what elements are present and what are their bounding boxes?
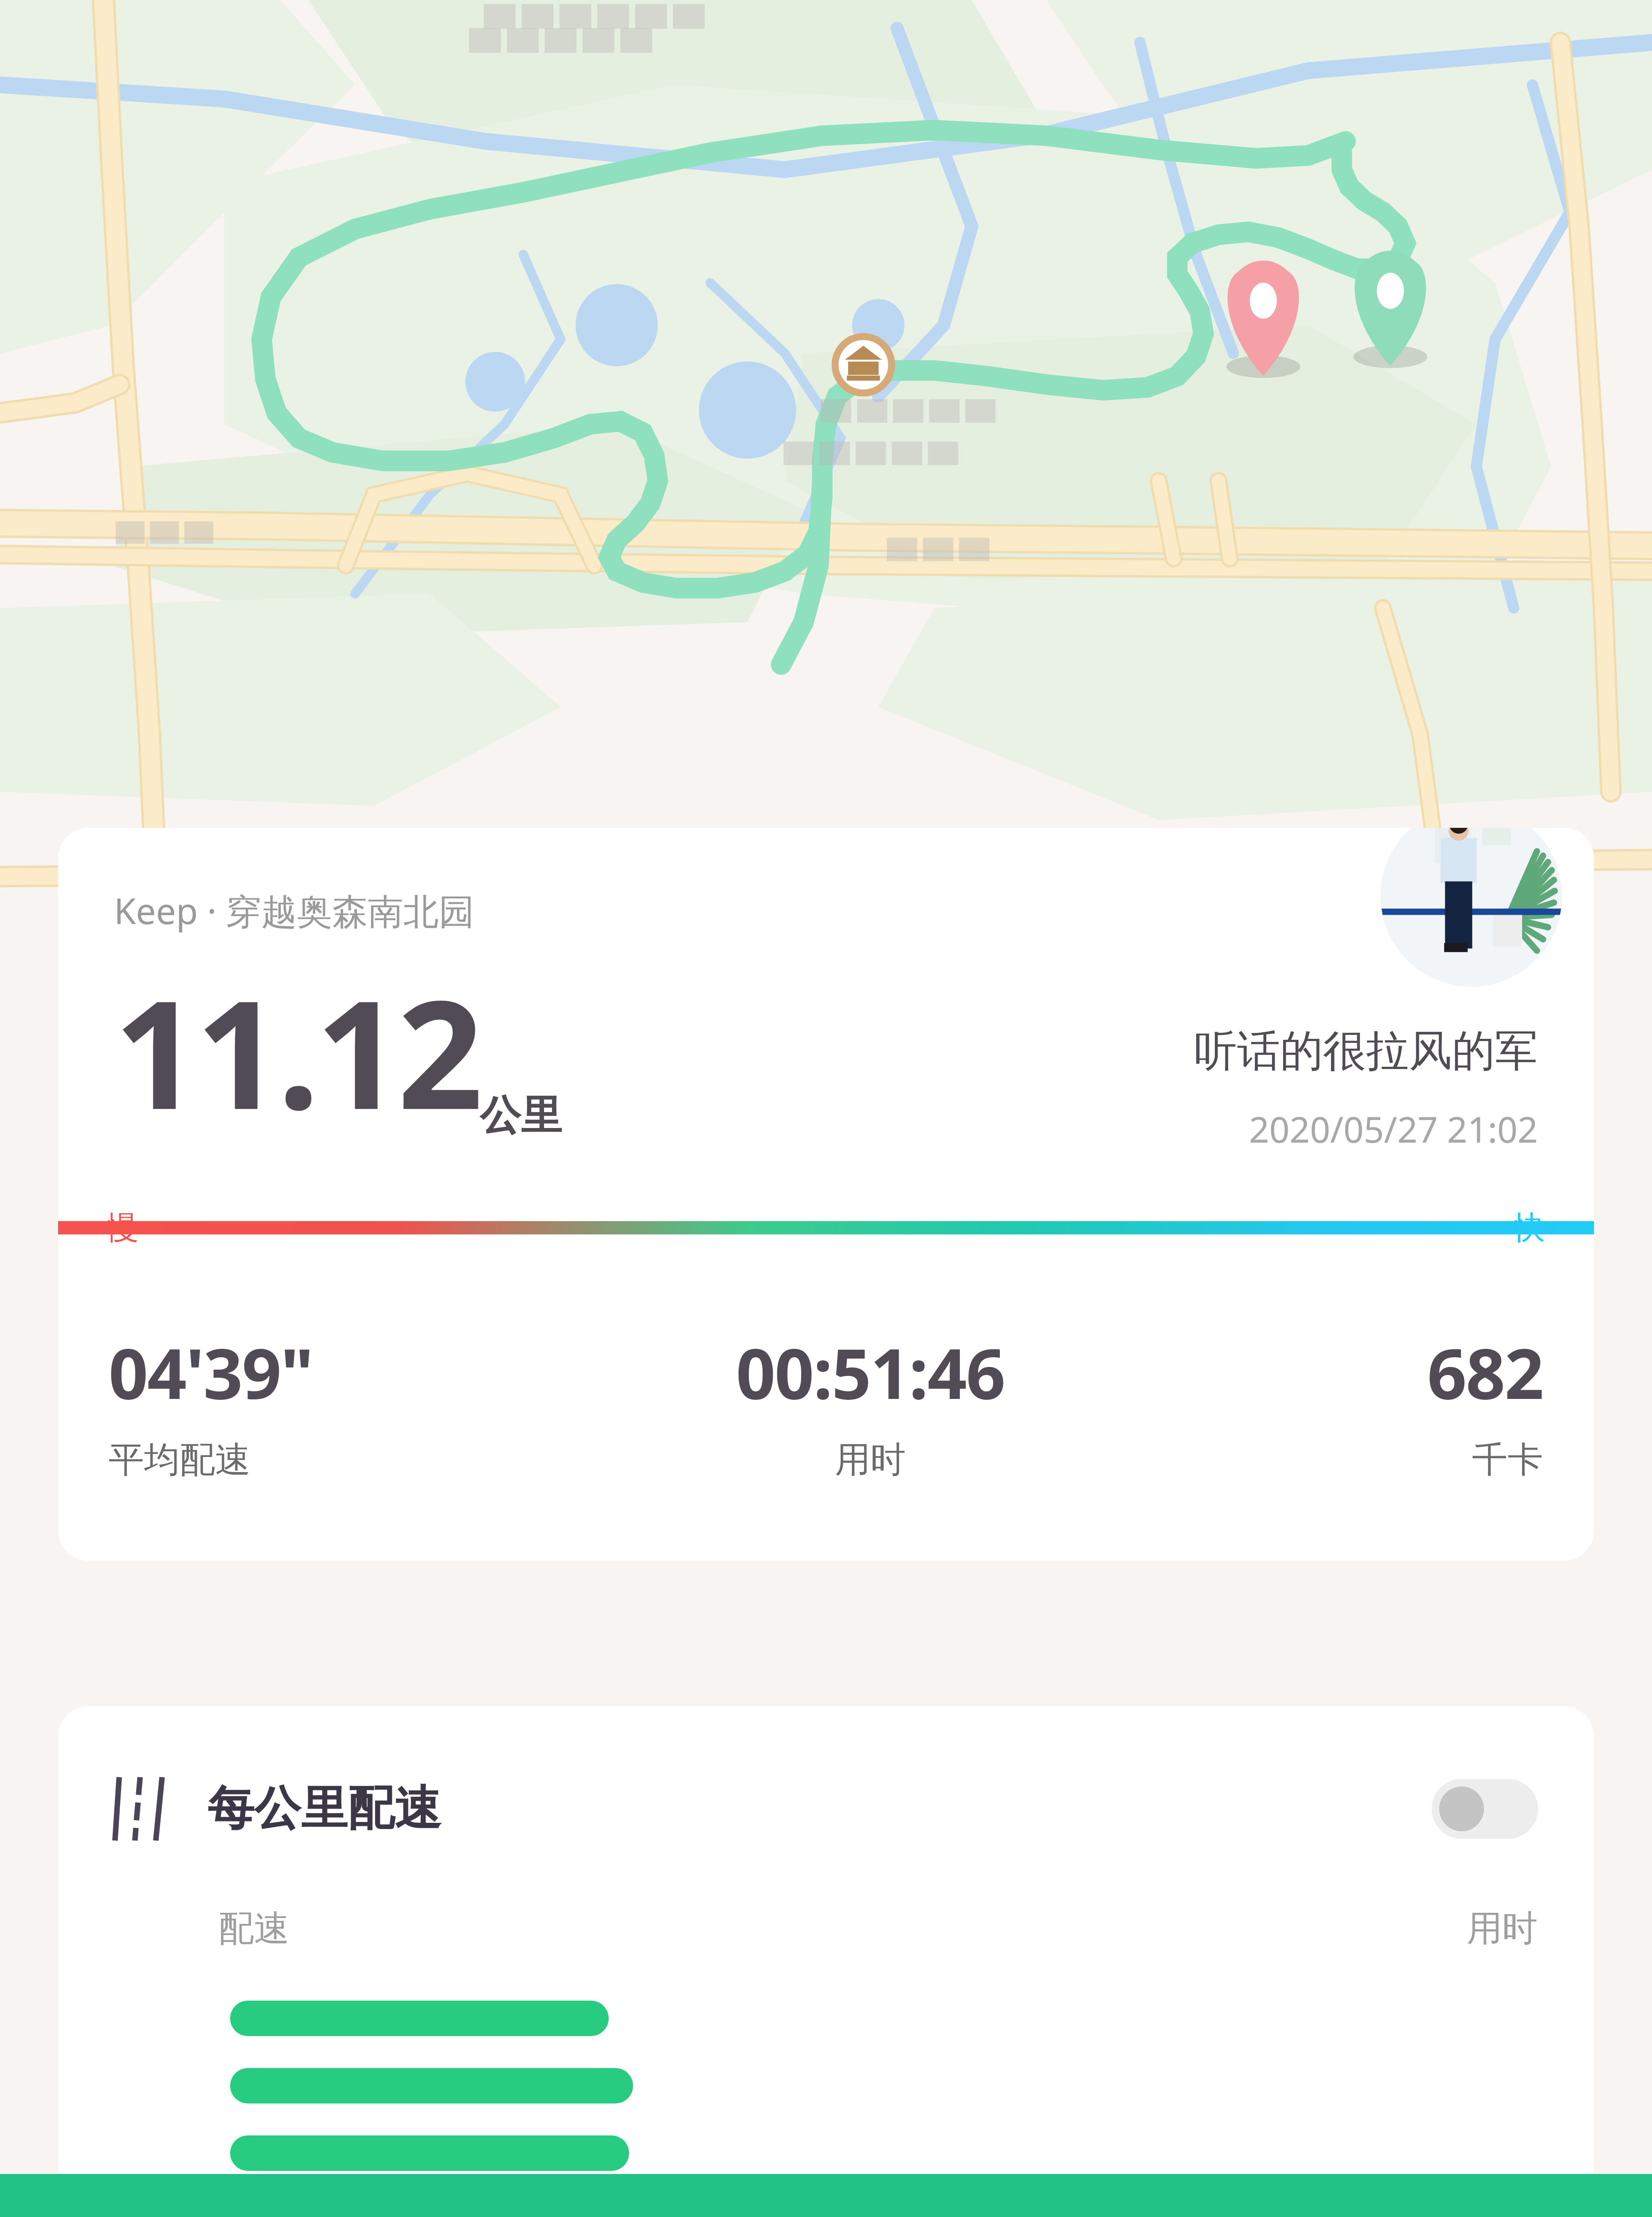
- staticText: 听话的很拉风的军: [1194, 1024, 1538, 1078]
- button[interactable]: Toggle pace list: [1432, 1779, 1538, 1839]
- staticText: 千卡: [1472, 1438, 1543, 1482]
- staticText: Keep · 穿越奥森南北园: [114, 886, 474, 934]
- staticText: 快: [1513, 1208, 1545, 1248]
- staticText: 慢: [107, 1208, 139, 1248]
- button[interactable]: 每公里配速: [58, 1706, 1594, 2217]
- staticText: 2020/05/27 21:02: [1249, 1105, 1538, 1153]
- staticText: 配速: [219, 1906, 290, 1951]
- staticText: 平均配速: [109, 1438, 251, 1482]
- staticText: 11.12: [114, 949, 480, 1153]
- staticText: 每公里配速: [207, 1779, 441, 1838]
- staticText: 公里: [480, 1090, 562, 1142]
- staticText: 用时: [835, 1438, 906, 1482]
- staticText: 00:51:46: [736, 1325, 1005, 1419]
- staticText: 用时: [1467, 1906, 1538, 1951]
- button[interactable]: Keep · 穿越奥森南北园: [58, 828, 1594, 1561]
- staticText: 04'39": [109, 1325, 313, 1419]
- button[interactable]: User avatar: [1381, 828, 1562, 987]
- staticText: 682: [1427, 1325, 1543, 1419]
